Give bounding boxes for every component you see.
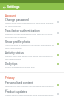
button[interactable]: Two-factor authentication xyxy=(55,30,61,36)
button[interactable]: Daily tips xyxy=(0,62,64,69)
button[interactable]: Activity status xyxy=(55,52,61,58)
staticText: Change password xyxy=(5,18,29,22)
staticText: Personalised content xyxy=(5,81,34,85)
staticText: Product updates xyxy=(5,90,28,94)
button[interactable]: Daily tips xyxy=(55,61,61,67)
staticText: Show profile photo xyxy=(5,40,31,44)
staticText: Others can see when you were last online… xyxy=(5,55,54,61)
staticText: Daily tips xyxy=(5,62,18,66)
button[interactable]: Product updates xyxy=(55,91,61,97)
staticText: Tailored to the things you browse and se… xyxy=(5,85,54,91)
button[interactable]: Back xyxy=(2,5,6,9)
staticText: Activity status xyxy=(5,51,24,55)
staticText: Display a code whenever you sign in to y… xyxy=(5,33,54,39)
button[interactable]: Show profile photo xyxy=(0,40,64,50)
staticText: Privacy xyxy=(5,76,15,80)
button[interactable]: Change password xyxy=(0,18,64,28)
button[interactable]: Change password xyxy=(55,19,61,25)
staticText: Short suggestions each day xyxy=(5,66,35,69)
button[interactable]: Two-factor authentication xyxy=(0,29,64,39)
staticText: Two-factor authentication xyxy=(5,29,40,33)
staticText: Settings xyxy=(7,5,20,9)
button[interactable]: Show profile photo xyxy=(55,41,61,47)
staticText: Make sure your password is long and uniq… xyxy=(5,22,54,28)
button[interactable]: Personalised content xyxy=(0,81,64,91)
staticText: Your picture is visible to all other mem… xyxy=(5,44,54,50)
button[interactable]: Activity status xyxy=(0,51,64,61)
staticText: Account xyxy=(5,14,16,18)
button[interactable]: Product updates xyxy=(0,90,64,97)
button[interactable]: Personalised content xyxy=(55,82,61,88)
staticText: News about new features and improvements xyxy=(5,94,54,97)
